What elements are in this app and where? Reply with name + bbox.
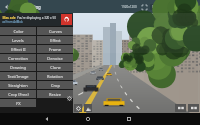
staticText: Levels [12, 38, 24, 43]
staticText: Crop [51, 83, 60, 88]
staticText: IMG3471.jpg [14, 4, 41, 10]
button[interactable]: Rotation [37, 72, 73, 80]
button[interactable]: Recents [124, 114, 134, 124]
button[interactable]: Correction [0, 54, 36, 62]
button[interactable]: Clone [37, 63, 73, 71]
button[interactable]: Text/Image [0, 72, 36, 80]
staticText: FX [16, 101, 21, 106]
staticText: 1920x1200 [121, 5, 137, 9]
button[interactable]: Undo [175, 104, 186, 112]
button[interactable]: Gallery [84, 104, 92, 112]
staticText: Mas ade [2, 16, 16, 20]
button[interactable]: Levels [0, 36, 36, 44]
staticText: Frame [49, 47, 61, 52]
button[interactable]: Camera [74, 104, 82, 112]
button[interactable]: Frame [37, 45, 73, 53]
button[interactable]: 80% [150, 4, 165, 10]
staticText: 80% [152, 5, 159, 9]
button[interactable]: Home [83, 114, 93, 124]
button[interactable]: FX [0, 99, 36, 107]
button[interactable]: Resize [37, 90, 73, 98]
staticText: Color [13, 29, 24, 34]
button[interactable]: Curves [37, 27, 73, 35]
staticText: Correction [8, 56, 28, 61]
button[interactable]: Redo [188, 104, 199, 112]
button[interactable]: Effect [37, 36, 73, 44]
button[interactable]: Crop (Free) [0, 90, 36, 98]
staticText: Rotation [47, 74, 63, 79]
staticText: Denoise [47, 56, 63, 61]
staticText: Effect II [11, 47, 26, 52]
button[interactable]: Drawing [0, 63, 36, 71]
button[interactable]: Crop size [140, 3, 148, 11]
button[interactable]: More options [189, 3, 197, 11]
button[interactable]: Back [3, 2, 12, 11]
staticText: Crop (Free) [8, 92, 29, 97]
staticText: Clone [50, 65, 61, 70]
button[interactable]: Color [0, 27, 36, 35]
staticText: Effect [50, 38, 61, 43]
button[interactable]: Save [168, 2, 177, 11]
staticText: Text/Image [7, 74, 29, 79]
staticText: You're displaying a 320 x 50 [17, 16, 56, 20]
staticText: Straighten [8, 83, 28, 88]
button[interactable]: Settings [66, 95, 73, 102]
button[interactable]: Back [42, 114, 52, 124]
button[interactable]: Mas ade [0, 13, 73, 26]
staticText: Curves [49, 29, 62, 34]
button[interactable]: Straighten [0, 81, 36, 89]
staticText: Drawing [10, 65, 26, 70]
staticText: ad from AdMob [2, 20, 23, 24]
button[interactable]: Denoise [37, 54, 73, 62]
button[interactable]: Crop [37, 81, 73, 89]
button[interactable]: Effect II [0, 45, 36, 53]
staticText: Resize [49, 92, 61, 97]
